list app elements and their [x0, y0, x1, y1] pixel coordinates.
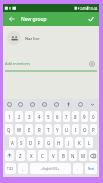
staticText: . — [77, 166, 79, 171]
staticText: H — [57, 140, 61, 146]
staticText: B — [62, 153, 65, 159]
staticText: K — [78, 140, 81, 146]
staticText: , — [22, 166, 24, 171]
button[interactable]: V — [49, 150, 57, 161]
button[interactable]: M — [79, 150, 87, 161]
button[interactable] — [5, 150, 14, 161]
staticText: E — [28, 127, 31, 133]
button[interactable]: 2 — [15, 111, 23, 122]
button[interactable]: 5 — [45, 111, 52, 122]
button[interactable]: 3 — [25, 111, 33, 122]
staticText: G — [47, 140, 51, 146]
button[interactable]: . — [73, 163, 83, 174]
button[interactable]: L — [85, 137, 93, 148]
button[interactable]: E — [25, 124, 33, 135]
button[interactable]: N — [69, 150, 77, 161]
button[interactable]: Add — [87, 59, 97, 69]
staticText: N — [71, 153, 75, 159]
button[interactable]: ◂ English (US) ▸ — [30, 163, 71, 174]
button[interactable]: 4 — [35, 111, 43, 122]
staticText: Add members — [5, 61, 31, 66]
staticText: C — [41, 153, 44, 159]
button[interactable]: 0 — [90, 111, 97, 122]
button[interactable]: J — [65, 137, 73, 148]
staticText: U — [65, 127, 69, 133]
staticText: I — [75, 127, 77, 133]
button[interactable]: A — [9, 137, 16, 148]
staticText: 7 — [65, 114, 68, 120]
button[interactable]: Q — [5, 124, 13, 135]
button[interactable]: P — [90, 124, 97, 135]
staticText: V — [52, 153, 55, 159]
button[interactable]: Naz live — [3, 30, 99, 46]
button[interactable]: S — [18, 137, 25, 148]
staticText: L — [88, 140, 91, 146]
button[interactable]: Voice input — [62, 99, 74, 110]
button[interactable]: X — [27, 150, 36, 161]
staticText: M — [81, 153, 85, 159]
button[interactable]: O — [81, 124, 88, 135]
staticText: W — [17, 127, 22, 133]
staticText: D — [29, 140, 33, 146]
button[interactable] — [89, 150, 97, 161]
button[interactable]: 7 — [63, 111, 70, 122]
button[interactable]: , — [18, 163, 28, 174]
staticText: Y — [56, 127, 59, 133]
staticText: S — [20, 140, 23, 146]
button[interactable]: D — [27, 137, 34, 148]
staticText: 5 — [47, 114, 50, 120]
staticText: 4 — [38, 114, 41, 120]
button[interactable]: Clipboard — [50, 99, 62, 110]
staticText: O — [83, 127, 87, 133]
button[interactable]: Stickers — [38, 99, 50, 110]
staticText: Naz live — [25, 36, 40, 41]
button[interactable]: 9 — [81, 111, 88, 122]
staticText: R — [38, 127, 41, 133]
staticText: X — [30, 153, 33, 159]
button[interactable]: K — [75, 137, 83, 148]
staticText: 6 — [56, 114, 59, 120]
staticText: T — [47, 127, 50, 133]
button[interactable]: Add members — [3, 57, 99, 70]
staticText: 24% — [80, 6, 87, 10]
button[interactable]: Done — [85, 13, 97, 25]
button[interactable]: 6 — [54, 111, 61, 122]
button[interactable]: C — [38, 150, 47, 161]
button[interactable]: G — [45, 137, 53, 148]
staticText: 3 — [28, 114, 31, 120]
button[interactable]: Settings — [74, 99, 86, 110]
staticText: 2 — [18, 114, 21, 120]
button[interactable]: T — [45, 124, 52, 135]
button[interactable]: F — [36, 137, 43, 148]
button[interactable]: ?123 — [5, 163, 16, 174]
button[interactable]: Google — [4, 99, 15, 110]
staticText: Next — [88, 167, 95, 171]
button[interactable]: Y — [54, 124, 61, 135]
button[interactable]: Z — [16, 150, 25, 161]
button[interactable]: Next — [85, 163, 97, 174]
button[interactable]: W — [15, 124, 23, 135]
button[interactable]: I — [72, 124, 79, 135]
staticText: 10:34 — [89, 6, 98, 10]
button[interactable]: R — [35, 124, 43, 135]
button[interactable]: Back — [6, 13, 18, 25]
staticText: New group — [21, 16, 47, 23]
staticText: F — [38, 140, 41, 146]
staticText: P — [92, 127, 95, 133]
button[interactable]: Collapse — [86, 99, 98, 110]
staticText: A — [11, 140, 14, 146]
button[interactable]: GIF — [26, 99, 38, 110]
staticText: 8 — [74, 114, 77, 120]
button[interactable]: 1 — [5, 111, 13, 122]
staticText: 1 — [8, 114, 11, 120]
button[interactable]: 8 — [72, 111, 79, 122]
staticText: ?123 — [7, 167, 14, 171]
button[interactable]: B — [59, 150, 67, 161]
staticText: 9 — [83, 114, 86, 120]
staticText: Q — [7, 127, 11, 133]
button[interactable]: Emoji — [15, 99, 26, 110]
staticText: 0 — [92, 114, 95, 120]
staticText: Z — [19, 153, 22, 159]
button[interactable]: H — [55, 137, 63, 148]
button[interactable]: U — [63, 124, 70, 135]
